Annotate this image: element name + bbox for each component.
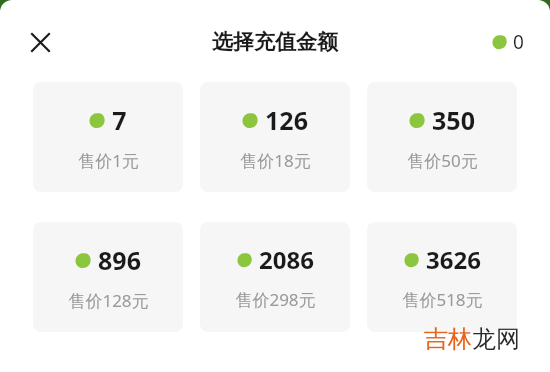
staticText: 7 xyxy=(112,103,127,137)
staticText: 2086 xyxy=(259,243,314,276)
staticText: 896 xyxy=(98,243,141,277)
staticText: 吉林 xyxy=(424,324,472,354)
button[interactable]: 2086 xyxy=(200,222,350,332)
staticText: 0 xyxy=(513,29,524,55)
staticText: 3626 xyxy=(426,243,481,276)
staticText: 350 xyxy=(432,103,475,137)
staticText: 售价298元 xyxy=(235,288,316,311)
button[interactable]: 0 xyxy=(492,29,524,55)
button[interactable]: 896 xyxy=(33,222,183,332)
staticText: 售价128元 xyxy=(68,289,149,312)
button[interactable]: 3626 xyxy=(367,222,517,332)
staticText: 售价50元 xyxy=(407,149,478,172)
staticText: 售价18元 xyxy=(240,149,311,172)
button[interactable]: 7 xyxy=(33,82,183,192)
staticText: 龙网 xyxy=(472,324,520,354)
staticText: 售价1元 xyxy=(78,149,139,172)
button[interactable]: 350 xyxy=(367,82,517,192)
staticText: 售价518元 xyxy=(402,288,483,311)
button[interactable]: Close xyxy=(22,24,58,60)
staticText: 126 xyxy=(265,103,308,137)
button[interactable]: 126 xyxy=(200,82,350,192)
staticText: 选择充值金额 xyxy=(212,29,338,55)
